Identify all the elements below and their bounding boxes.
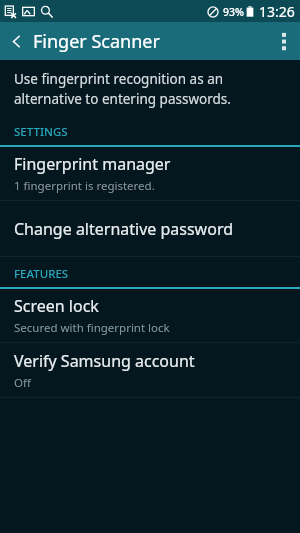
staticText: Verify Samsung account — [14, 350, 195, 372]
staticText: 93% — [223, 5, 244, 19]
button[interactable]: Screen lock — [0, 289, 300, 343]
button[interactable]: Navigate up — [0, 22, 33, 60]
staticText: Secured with fingerprint lock — [14, 320, 170, 336]
staticText: FEATURES — [14, 266, 69, 282]
staticText: Off — [14, 375, 31, 391]
staticText: 13:26 — [259, 2, 295, 21]
staticText: 1 fingerprint is registered. — [14, 178, 155, 194]
staticText: Screen lock — [14, 295, 99, 317]
button[interactable]: More options — [268, 22, 300, 60]
staticText: Finger Scanner — [33, 29, 160, 54]
button[interactable]: Verify Samsung account — [0, 343, 300, 398]
staticText: SETTINGS — [14, 124, 68, 140]
staticText: Change alternative password — [14, 218, 234, 240]
staticText: Use fingerprint recognition as an altern… — [14, 70, 278, 108]
button[interactable]: Fingerprint manager — [0, 147, 300, 201]
button[interactable]: Change alternative password — [0, 201, 300, 257]
staticText: Fingerprint manager — [14, 153, 171, 175]
